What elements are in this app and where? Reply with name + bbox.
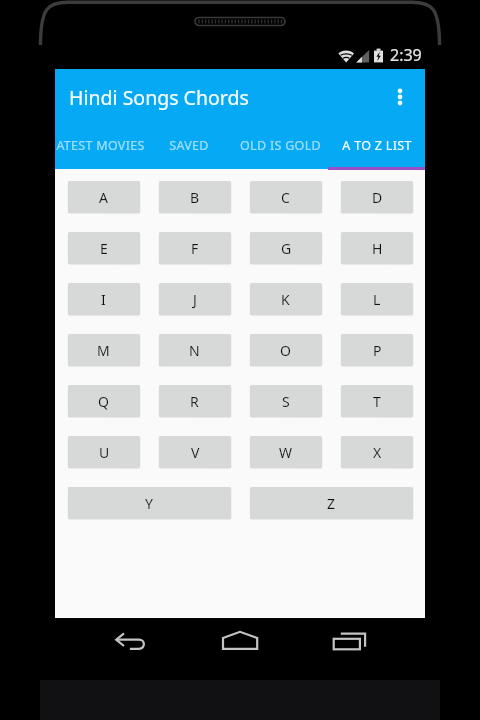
staticText: M (97, 341, 111, 360)
button[interactable]: V (159, 436, 231, 468)
button[interactable]: G (250, 232, 322, 264)
staticText: A (99, 188, 109, 207)
staticText: B (190, 188, 200, 207)
button[interactable]: C (250, 181, 322, 213)
button[interactable]: I (68, 283, 140, 315)
button[interactable]: P (341, 334, 413, 366)
staticText: I (101, 290, 107, 309)
staticText: L (373, 290, 381, 309)
button[interactable]: A (68, 181, 140, 213)
staticText: O (280, 341, 292, 360)
staticText: S (282, 392, 291, 411)
staticText: K (281, 290, 291, 309)
staticText: G (281, 239, 292, 258)
staticText: P (373, 341, 382, 360)
button[interactable]: Recent apps (326, 618, 374, 666)
button[interactable]: D (341, 181, 413, 213)
staticText: Hindi Songs Chords (69, 84, 249, 111)
staticText: N (189, 341, 201, 360)
staticText: T (373, 392, 382, 411)
staticText: R (190, 392, 200, 411)
button[interactable]: Y (68, 487, 231, 519)
button[interactable]: H (341, 232, 413, 264)
staticText: W (279, 443, 293, 462)
staticText: F (191, 239, 199, 258)
button[interactable]: U (68, 436, 140, 468)
button[interactable]: X (341, 436, 413, 468)
staticText: OLD IS GOLD (240, 137, 321, 154)
staticText: Z (327, 494, 336, 513)
button[interactable]: T (341, 385, 413, 417)
button[interactable]: Back (108, 618, 156, 666)
button[interactable]: R (159, 385, 231, 417)
staticText: SAVED (169, 137, 209, 154)
button[interactable]: Q (68, 385, 140, 417)
button[interactable]: J (159, 283, 231, 315)
button[interactable]: W (250, 436, 322, 468)
staticText: V (191, 443, 200, 462)
staticText: Q (98, 392, 110, 411)
button[interactable]: O (250, 334, 322, 366)
button[interactable]: B (159, 181, 231, 213)
staticText: U (99, 443, 110, 462)
staticText: Y (145, 494, 154, 513)
staticText: A TO Z LIST (342, 137, 412, 154)
staticText: X (373, 443, 382, 462)
staticText: ATEST MOVIES (56, 137, 145, 154)
button[interactable]: A TO Z LIST (328, 125, 425, 166)
button[interactable]: L (341, 283, 413, 315)
staticText: 2:39 (390, 44, 422, 66)
button[interactable]: ATEST MOVIES (55, 125, 146, 166)
staticText: J (193, 290, 198, 309)
button[interactable]: K (250, 283, 322, 315)
button[interactable]: F (159, 232, 231, 264)
staticText: C (281, 188, 291, 207)
button[interactable]: OLD IS GOLD (232, 125, 328, 166)
button[interactable]: SAVED (146, 125, 232, 166)
button[interactable]: More options (378, 75, 422, 119)
staticText: H (372, 239, 383, 258)
button[interactable]: M (68, 334, 140, 366)
staticText: E (100, 239, 109, 258)
button[interactable]: N (159, 334, 231, 366)
button[interactable]: E (68, 232, 140, 264)
button[interactable]: S (250, 385, 322, 417)
button[interactable]: Z (250, 487, 413, 519)
button[interactable]: Home (216, 618, 264, 666)
staticText: D (372, 188, 383, 207)
